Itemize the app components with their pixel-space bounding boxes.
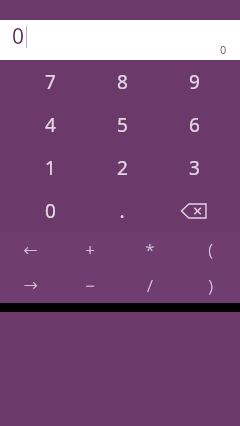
button[interactable]: * <box>120 232 180 267</box>
staticText: ( <box>208 238 213 261</box>
button[interactable]: 4 <box>14 103 86 146</box>
button[interactable]: ( <box>180 232 240 267</box>
button[interactable]: 5 <box>86 103 158 146</box>
button[interactable]: 7 <box>14 60 86 103</box>
button[interactable]: 6 <box>158 103 230 146</box>
staticText: / <box>147 274 153 297</box>
button[interactable]: . <box>86 189 158 232</box>
button[interactable]: 9 <box>158 60 230 103</box>
button[interactable]: ← <box>0 232 60 267</box>
button[interactable]: 8 <box>86 60 158 103</box>
button[interactable]: 3 <box>158 146 230 189</box>
staticText: 2 <box>117 155 128 181</box>
button[interactable]: → <box>0 267 60 303</box>
button[interactable]: + <box>60 232 120 267</box>
staticText: 7 <box>45 69 56 95</box>
staticText: * <box>145 238 155 261</box>
button[interactable]: ) <box>180 267 240 303</box>
staticText: 5 <box>117 112 128 138</box>
button[interactable]: / <box>120 267 180 303</box>
staticText: → <box>23 275 38 295</box>
staticText: − <box>85 274 95 297</box>
staticText: 3 <box>189 155 200 181</box>
staticText: 6 <box>189 112 200 138</box>
staticText: 8 <box>117 69 128 95</box>
staticText: 4 <box>45 112 56 138</box>
button[interactable]: 1 <box>14 146 86 189</box>
staticText: ← <box>23 240 38 260</box>
staticText: 0 <box>45 198 56 224</box>
button[interactable]: 0 <box>14 189 86 232</box>
button[interactable]: Backspace <box>158 189 230 232</box>
staticText: + <box>85 238 95 261</box>
staticText: 1 <box>45 155 56 181</box>
staticText: 0 <box>12 22 25 51</box>
staticText: 9 <box>189 69 200 95</box>
button[interactable]: − <box>60 267 120 303</box>
staticText: 0 <box>220 42 227 57</box>
staticText: ) <box>208 274 213 297</box>
button[interactable]: 2 <box>86 146 158 189</box>
staticText: . <box>119 198 125 224</box>
